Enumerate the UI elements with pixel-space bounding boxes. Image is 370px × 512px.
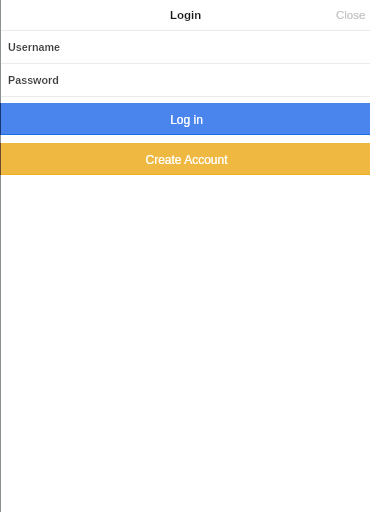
- staticText: Password: [8, 74, 59, 86]
- button[interactable]: Username: [0, 31, 370, 63]
- button[interactable]: Create Account: [0, 143, 370, 175]
- staticText: Log in: [170, 113, 203, 126]
- staticText: Create Account: [145, 153, 228, 166]
- staticText: Close: [336, 9, 366, 22]
- staticText: Login: [170, 9, 202, 22]
- staticText: Username: [8, 41, 60, 53]
- button[interactable]: Close: [336, 9, 370, 22]
- button[interactable]: Password: [0, 64, 370, 96]
- button[interactable]: Log in: [0, 103, 370, 135]
